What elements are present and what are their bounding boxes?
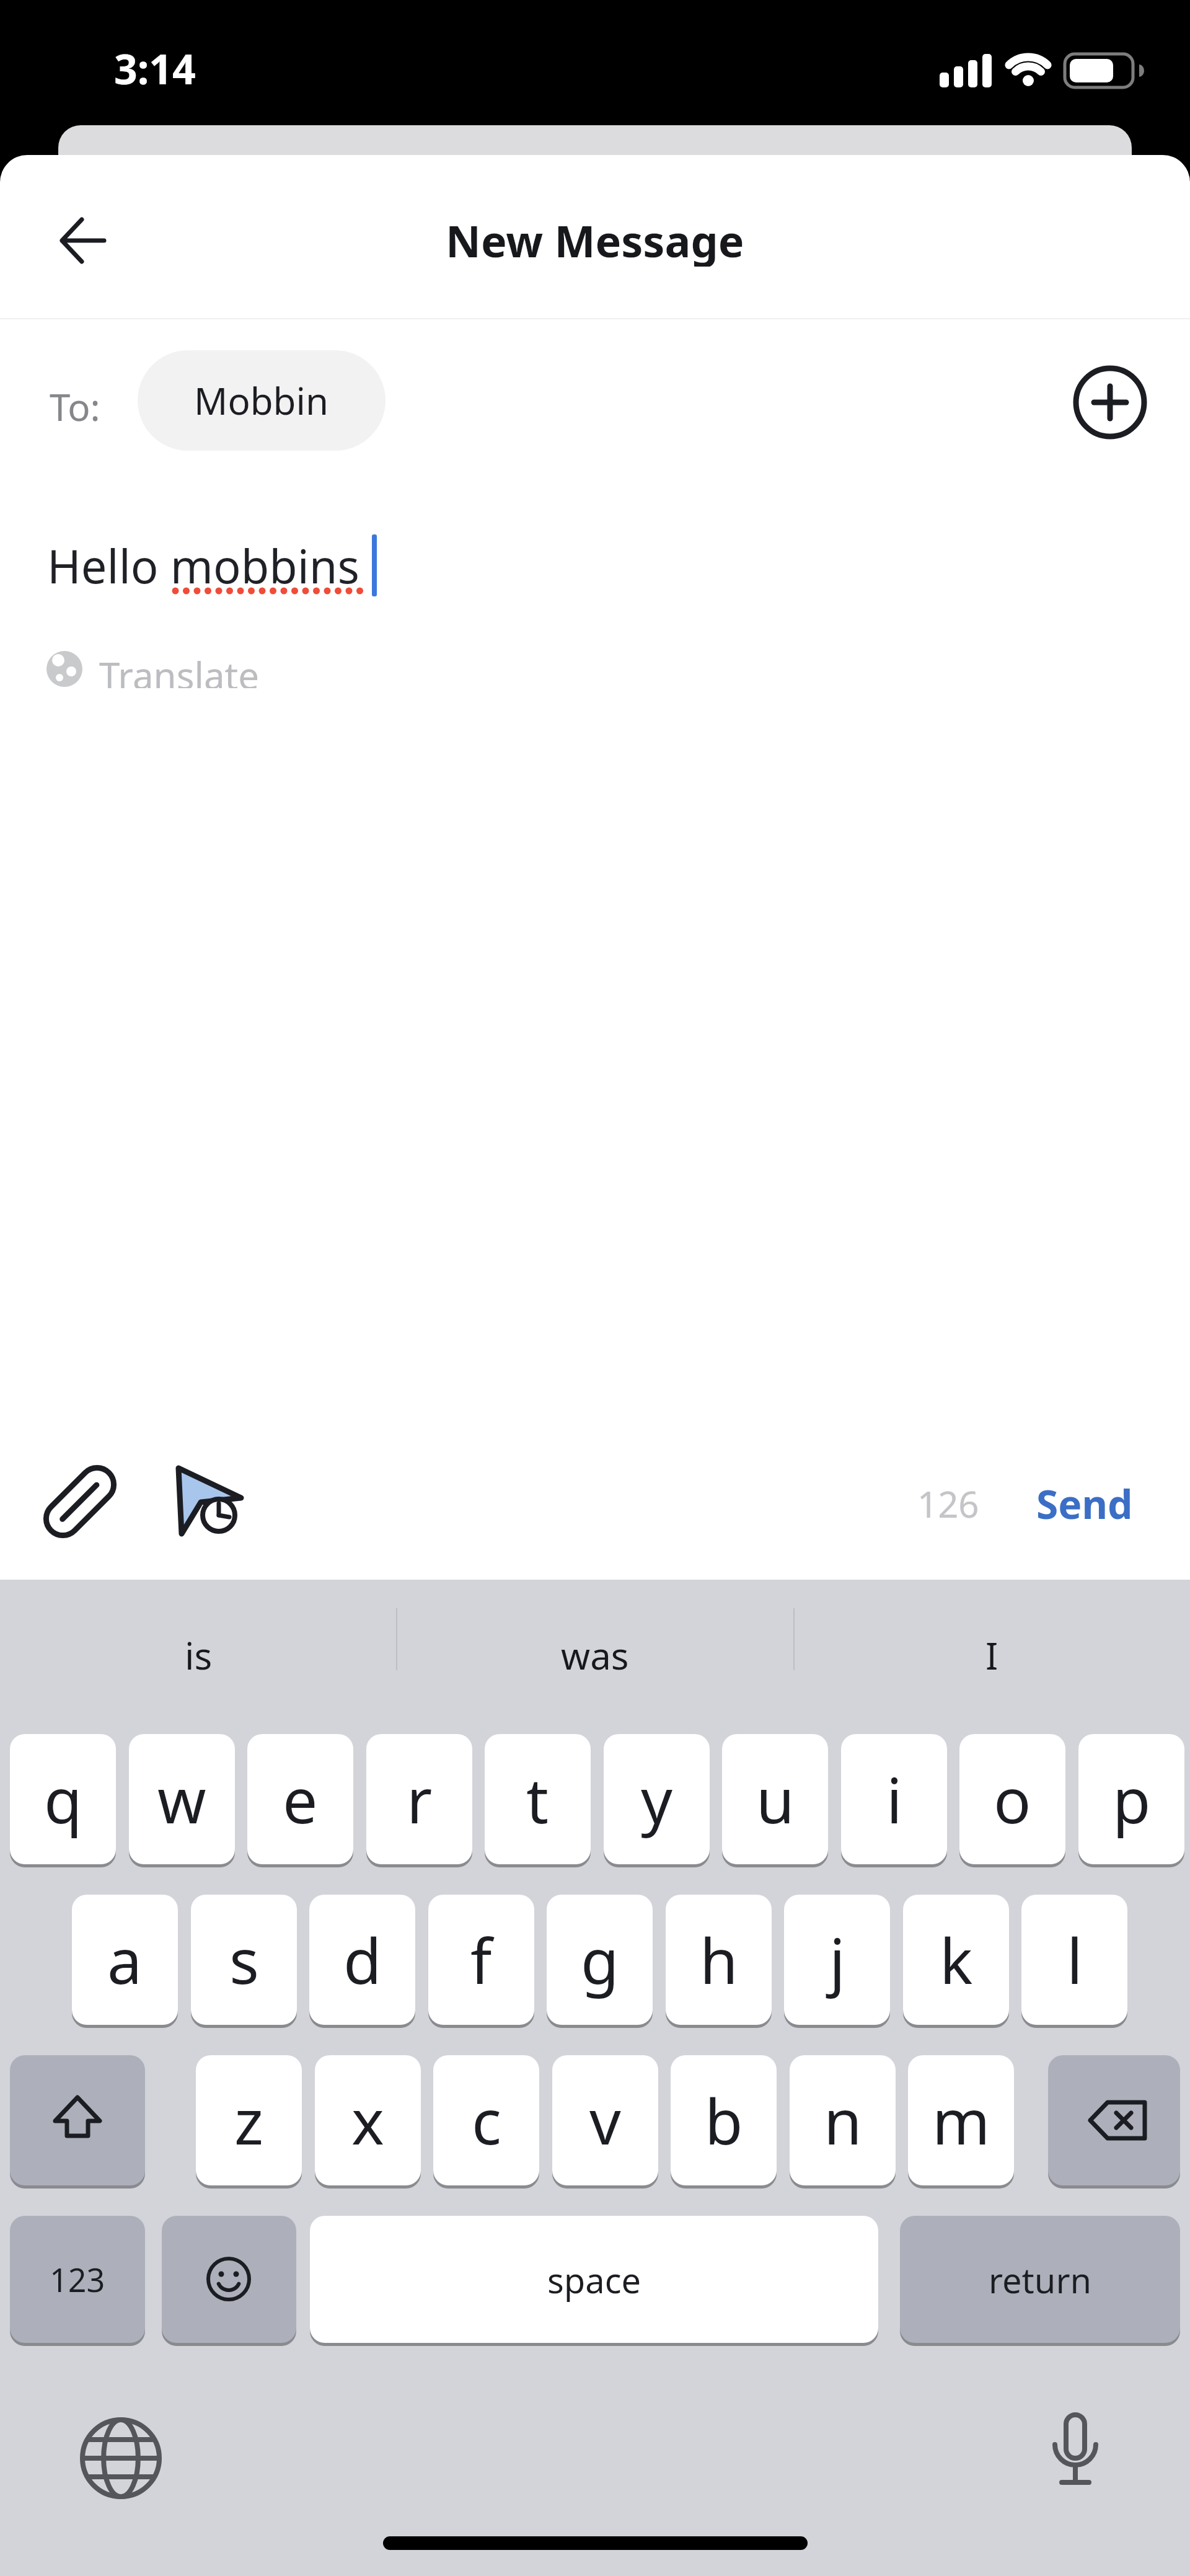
staticText: g	[581, 1918, 619, 2002]
button[interactable]: r	[366, 1734, 472, 1864]
staticText: b	[705, 2078, 743, 2162]
button[interactable]: a	[72, 1895, 178, 2025]
button[interactable]: b	[671, 2055, 777, 2185]
staticText: To:	[50, 381, 100, 425]
staticText: h	[700, 1918, 738, 2002]
button[interactable]: was	[397, 1621, 793, 1689]
staticText: w	[157, 1757, 206, 1841]
button[interactable]: m	[908, 2055, 1014, 2185]
staticText: s	[229, 1918, 259, 2002]
button[interactable]	[37, 1458, 124, 1545]
button[interactable]: 123	[10, 2216, 145, 2343]
staticText: space	[547, 2256, 641, 2303]
button[interactable]: I	[793, 1621, 1190, 1689]
button[interactable]: o	[959, 1734, 1065, 1864]
staticText: x	[351, 2078, 384, 2162]
staticText: v	[589, 2078, 621, 2162]
button[interactable]: h	[666, 1895, 772, 2025]
button[interactable]: return	[900, 2216, 1180, 2343]
staticText: Hello mobbins	[47, 534, 360, 596]
button[interactable]: c	[433, 2055, 539, 2185]
button[interactable]: j	[784, 1895, 890, 2025]
button[interactable]: x	[315, 2055, 421, 2185]
button[interactable]	[10, 2055, 145, 2185]
staticText: Mobbin	[194, 375, 329, 426]
button[interactable]	[1048, 2055, 1180, 2185]
button[interactable]: s	[191, 1895, 297, 2025]
button[interactable]: t	[485, 1734, 591, 1864]
staticText: is	[185, 1630, 213, 1681]
button[interactable]: Mobbin	[138, 350, 386, 451]
staticText: r	[407, 1757, 433, 1841]
staticText: f	[470, 1918, 492, 2002]
staticText: 126	[917, 1479, 979, 1528]
button[interactable]: Send	[1023, 1476, 1147, 1531]
button[interactable]	[162, 2216, 296, 2343]
button[interactable]: d	[309, 1895, 415, 2025]
staticText: Send	[1036, 1477, 1133, 1531]
button[interactable]: y	[604, 1734, 710, 1864]
button[interactable]: v	[552, 2055, 658, 2185]
staticText: j	[829, 1918, 845, 2002]
button[interactable]	[46, 650, 281, 688]
staticText: y	[641, 1757, 672, 1841]
button[interactable]	[1029, 2406, 1122, 2511]
button[interactable]: k	[903, 1895, 1009, 2025]
button[interactable]	[43, 205, 124, 279]
staticText: c	[472, 2078, 501, 2162]
button[interactable]: z	[196, 2055, 302, 2185]
button[interactable]: u	[722, 1734, 828, 1864]
button[interactable]: w	[129, 1734, 235, 1864]
button[interactable]: l	[1021, 1895, 1127, 2025]
staticText: p	[1113, 1757, 1151, 1841]
staticText: e	[283, 1757, 318, 1841]
button[interactable]: e	[247, 1734, 353, 1864]
staticText: d	[343, 1918, 382, 2002]
button[interactable]: q	[10, 1734, 116, 1864]
button[interactable]: g	[547, 1895, 653, 2025]
staticText: o	[994, 1757, 1031, 1841]
staticText: u	[756, 1757, 795, 1841]
staticText: m	[932, 2078, 990, 2162]
button[interactable]	[74, 2412, 167, 2505]
staticText: return	[989, 2256, 1092, 2303]
staticText: Translate	[99, 650, 260, 688]
staticText: 3:14	[114, 40, 196, 96]
button[interactable]: i	[841, 1734, 947, 1864]
button[interactable]: p	[1078, 1734, 1184, 1864]
staticText: l	[1067, 1918, 1083, 2002]
staticText: New Message	[446, 211, 744, 267]
button[interactable]: n	[790, 2055, 896, 2185]
button[interactable]: f	[428, 1895, 534, 2025]
staticText: a	[107, 1918, 143, 2002]
staticText: k	[940, 1918, 973, 2002]
button[interactable]: is	[0, 1621, 397, 1689]
staticText: t	[526, 1757, 549, 1841]
staticText: was	[561, 1630, 629, 1681]
button[interactable]	[161, 1457, 254, 1544]
staticText: z	[234, 2078, 263, 2162]
button[interactable]	[1073, 365, 1147, 440]
staticText: 123	[50, 2257, 105, 2301]
staticText: I	[985, 1630, 998, 1681]
staticText: n	[824, 2078, 862, 2162]
staticText: i	[886, 1757, 902, 1841]
staticText: q	[44, 1757, 82, 1841]
button[interactable]: space	[310, 2216, 878, 2343]
